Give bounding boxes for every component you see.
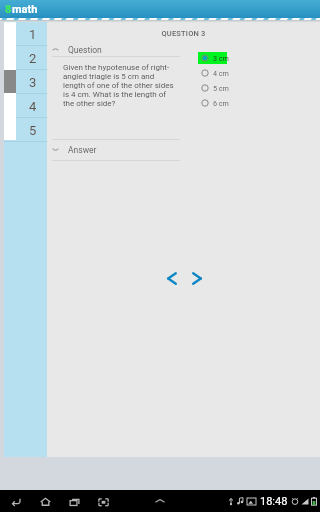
button[interactable]: Previous question [162, 264, 182, 292]
button[interactable]: 8 [0, 0, 320, 18]
button[interactable]: 1 [4, 22, 47, 46]
button[interactable]: Next question [187, 264, 207, 292]
staticText: 1 [29, 27, 37, 42]
button[interactable]: 4 cm [198, 65, 238, 80]
staticText: 8 [5, 3, 12, 16]
staticText: 4 cm [213, 69, 229, 77]
button[interactable]: Recent apps [66, 493, 82, 509]
staticText: Answer [68, 145, 97, 155]
button[interactable]: 6 cm [198, 95, 238, 110]
staticText: 4 [29, 99, 37, 114]
button[interactable]: 3 cm [198, 50, 238, 65]
button[interactable]: Question [47, 43, 320, 56]
button[interactable]: 4 [4, 94, 47, 118]
staticText: 2 [29, 51, 37, 66]
staticText: 3 [29, 75, 37, 90]
staticText: 5 [29, 123, 37, 138]
button[interactable]: Screenshot [95, 493, 111, 509]
staticText: Given the hypotenuse of right-angled tri… [63, 63, 177, 108]
button[interactable]: Home [37, 493, 53, 509]
button[interactable]: Back [8, 493, 24, 509]
staticText: 18:48 [260, 495, 288, 508]
staticText: QUESTION 3 [161, 29, 206, 38]
button[interactable]: 5 cm [198, 80, 238, 95]
staticText: 5 cm [213, 84, 229, 92]
button[interactable]: 3 [4, 70, 47, 94]
button[interactable]: Answer [47, 143, 320, 156]
button[interactable]: Expand status bar [152, 493, 168, 509]
staticText: Question [68, 45, 102, 55]
staticText: 3 cm [213, 54, 229, 62]
button[interactable]: 5 [4, 118, 47, 142]
staticText: math [12, 3, 38, 16]
staticText: 6 cm [213, 99, 229, 107]
button[interactable]: 2 [4, 46, 47, 70]
